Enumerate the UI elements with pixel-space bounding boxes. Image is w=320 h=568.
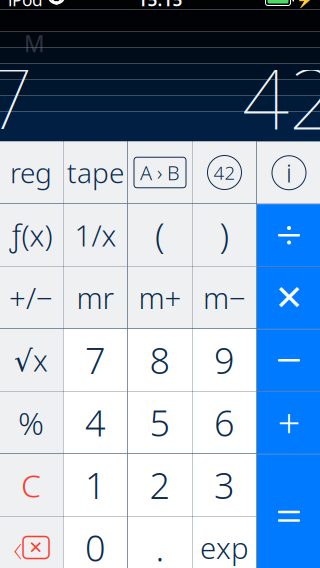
button[interactable]: reg [0, 141, 63, 203]
staticText: 42 [213, 160, 235, 185]
staticText: 9 [214, 336, 235, 384]
button[interactable]: Minus [257, 329, 320, 391]
staticText: ✕ [274, 278, 303, 317]
staticText: A › B [140, 159, 180, 186]
staticText: 8 [149, 336, 170, 384]
staticText: 6 [214, 399, 235, 446]
button[interactable]: % [0, 391, 63, 453]
button[interactable]: ( [128, 204, 192, 266]
staticText: +/− [9, 278, 53, 317]
button[interactable]: . [128, 516, 192, 568]
staticText: + [277, 396, 300, 449]
button[interactable]: +/− [0, 266, 63, 328]
staticText: C [21, 464, 41, 506]
staticText: ƒ(x) [9, 215, 52, 254]
staticText: i [286, 156, 292, 189]
button[interactable]: tape [63, 141, 127, 203]
button[interactable]: m+ [128, 266, 192, 328]
button[interactable]: ƒ(x) [0, 204, 63, 266]
button[interactable]: C [0, 454, 63, 516]
button[interactable]: Backspace [0, 516, 63, 568]
button[interactable]: 8 [128, 329, 192, 391]
button[interactable]: exp [192, 516, 256, 568]
staticText: m− [203, 278, 246, 317]
staticText: 2 [149, 461, 170, 509]
button[interactable]: mr [63, 266, 127, 328]
button[interactable]: 9 [192, 329, 256, 391]
staticText: exp [200, 528, 249, 567]
staticText: reg [10, 154, 52, 191]
staticText: 42 [242, 43, 320, 152]
staticText: M [24, 28, 45, 58]
staticText: ✕ [28, 538, 43, 557]
button[interactable]: √x [0, 329, 63, 391]
staticText: iPod [8, 0, 43, 11]
staticText: 7 [0, 43, 33, 152]
button[interactable]: Convert A to B [128, 141, 192, 203]
staticText: 3 [214, 461, 235, 509]
button[interactable]: ✕ [257, 267, 320, 329]
button[interactable]: ) [192, 204, 256, 266]
button[interactable]: 4 [63, 391, 127, 453]
staticText: 1 [85, 461, 106, 509]
staticText: ⚡ [296, 0, 314, 8]
staticText: % [18, 401, 44, 444]
staticText: √x [14, 340, 48, 379]
staticText: . [155, 524, 164, 568]
button[interactable]: m− [192, 266, 256, 328]
staticText: 0 [85, 524, 106, 568]
button[interactable]: 2 [128, 454, 192, 516]
staticText: 15:15 [137, 0, 182, 11]
button[interactable]: 7 [63, 329, 127, 391]
button[interactable]: Info [257, 142, 320, 204]
button[interactable]: Answer 42 [192, 141, 256, 203]
button[interactable]: 1 [63, 454, 127, 516]
staticText: 7 [85, 336, 106, 384]
staticText: ( [155, 212, 165, 258]
button[interactable]: Equals [257, 454, 320, 568]
button[interactable]: 6 [192, 391, 256, 453]
button[interactable]: Divide [257, 204, 320, 266]
staticText: 5 [149, 399, 170, 446]
button[interactable]: 5 [128, 391, 192, 453]
staticText: 1/x [74, 215, 116, 254]
button[interactable]: 0 [63, 516, 127, 568]
staticText: 4 [85, 399, 106, 446]
staticText: ‹ [13, 521, 22, 568]
staticText: mr [76, 278, 114, 317]
staticText: ) [219, 212, 229, 258]
button[interactable]: 1/x [63, 204, 127, 266]
staticText: m+ [138, 278, 181, 317]
staticText: tape [67, 154, 124, 191]
button[interactable]: 3 [192, 454, 256, 516]
button[interactable]: + [257, 392, 320, 454]
